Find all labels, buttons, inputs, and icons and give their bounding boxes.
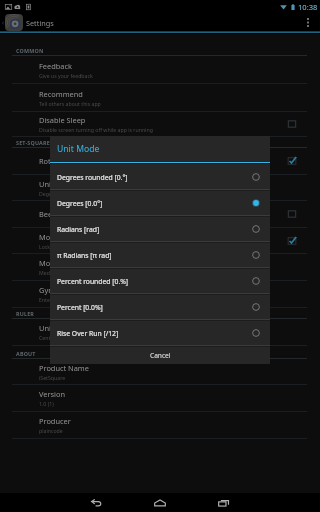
button[interactable]: Unit Mode xyxy=(0,175,320,201)
button[interactable]: Degrees rounded [0.°] xyxy=(50,165,270,191)
button[interactable]: Unit Mode xyxy=(0,319,320,346)
button[interactable]: π Radians [π rad] xyxy=(50,243,270,269)
button[interactable]: Back xyxy=(64,493,128,512)
staticText: Degrees [0.0°] xyxy=(39,190,74,197)
staticText: Enter calibration xyxy=(39,296,80,303)
staticText: Degrees [0.0°] xyxy=(57,199,250,208)
staticText: iSetSquare xyxy=(39,374,66,381)
staticText: Rise Over Run [/12] xyxy=(57,329,250,338)
staticText: Feedback xyxy=(39,61,72,71)
button[interactable]: Radians [rad] xyxy=(50,217,270,243)
staticText: Unit Mode xyxy=(39,179,76,189)
button[interactable]: Degrees [0.0°] xyxy=(50,191,270,217)
button[interactable]: Gyroscope xyxy=(0,281,320,308)
staticText: Monitor xyxy=(39,232,67,242)
staticText: Unit Mode xyxy=(57,143,100,155)
staticText: Lock the monitor view xyxy=(39,243,93,250)
button[interactable]: Home xyxy=(128,493,192,512)
staticText: Percent rounded [0.%] xyxy=(57,277,250,286)
staticText: Rotation xyxy=(39,156,69,166)
button[interactable]: Beep xyxy=(0,201,320,228)
staticText: Cancel xyxy=(150,351,171,360)
staticText: RULER xyxy=(16,310,35,317)
staticText: SET-SQUARE xyxy=(16,139,50,146)
staticText: Disable Sleep xyxy=(39,115,86,125)
button[interactable]: Producer xyxy=(0,412,320,439)
staticText: Disable screen turning off while app is … xyxy=(39,126,153,133)
button[interactable]: Recent apps xyxy=(192,493,256,512)
button[interactable]: Version xyxy=(0,385,320,412)
button[interactable]: Rise Over Run [/12] xyxy=(50,321,270,347)
staticText: Settings xyxy=(26,18,54,28)
staticText: π Radians [π rad] xyxy=(57,251,250,260)
staticText: Degrees rounded [0.°] xyxy=(57,173,250,182)
button[interactable]: Product Name xyxy=(0,359,320,385)
button[interactable]: Feedback xyxy=(0,56,320,84)
staticText: Producer xyxy=(39,416,71,426)
button[interactable]: Disable Sleep xyxy=(0,112,320,137)
staticText: Medium xyxy=(39,269,60,276)
button[interactable]: Rotation xyxy=(0,148,320,175)
staticText: Gyroscope xyxy=(39,285,76,295)
button[interactable]: Percent rounded [0.%] xyxy=(50,269,270,295)
button[interactable]: Navigate up xyxy=(0,14,5,31)
button[interactable]: Monitor Mode xyxy=(0,254,320,281)
staticText: Product Name xyxy=(39,363,89,373)
staticText: 10:38 xyxy=(298,2,318,12)
button[interactable]: More options xyxy=(299,14,316,31)
staticText: Unit Mode xyxy=(39,323,76,333)
staticText: Radians [rad] xyxy=(57,225,250,234)
staticText: COMMON xyxy=(16,47,44,54)
staticText: Beep xyxy=(39,209,57,219)
button[interactable]: Cancel xyxy=(50,347,270,364)
staticText: Monitor Mode xyxy=(39,258,89,268)
staticText: 1.0 (1) xyxy=(39,400,54,407)
staticText: Percent [0.0%] xyxy=(57,303,250,312)
staticText: Version xyxy=(39,389,65,399)
staticText: Tell others about this app xyxy=(39,100,101,107)
button[interactable]: Percent [0.0%] xyxy=(50,295,270,321)
staticText: plaincode xyxy=(39,427,63,434)
staticText: Give us your feedback xyxy=(39,72,93,79)
button[interactable]: Monitor xyxy=(0,228,320,254)
staticText: Centimeters [cm] xyxy=(39,334,81,341)
staticText: ABOUT xyxy=(16,350,36,357)
button[interactable]: Recommend xyxy=(0,84,320,112)
staticText: Recommend xyxy=(39,89,83,99)
